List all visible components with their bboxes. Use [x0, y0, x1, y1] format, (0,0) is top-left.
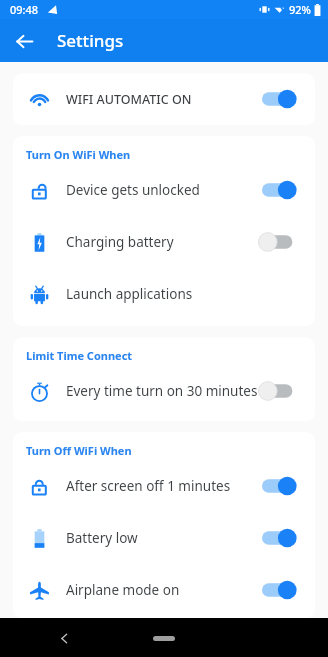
button[interactable]: Charging battery — [13, 216, 315, 268]
button[interactable]: Toggle on — [262, 473, 302, 499]
staticText: Battery low — [66, 529, 262, 547]
button[interactable]: Toggle off — [262, 229, 302, 255]
staticText: Airplane mode on — [66, 581, 262, 599]
button[interactable]: Toggle on — [262, 577, 302, 603]
staticText: Settings — [57, 29, 124, 52]
button[interactable]: Toggle off — [262, 378, 302, 404]
button[interactable]: Toggle on — [262, 86, 302, 112]
staticText: Charging battery — [66, 233, 262, 251]
staticText: 09:48 — [10, 2, 39, 17]
staticText: Turn Off WiFi When — [26, 443, 132, 458]
button[interactable]: Every time turn on 30 minutes — [13, 365, 315, 417]
button[interactable]: After screen off 1 minutes — [13, 460, 315, 512]
button[interactable]: Battery low — [13, 512, 315, 564]
button[interactable]: WIFI AUTOMATIC ON — [13, 73, 315, 125]
staticText: Every time turn on 30 minutes — [66, 382, 262, 400]
button[interactable]: Toggle on — [262, 177, 302, 203]
staticText: Turn On WiFi When — [26, 147, 131, 162]
button[interactable]: Launch applications — [13, 268, 315, 320]
button[interactable]: Back — [50, 624, 78, 652]
staticText: Launch applications — [66, 285, 302, 303]
button[interactable]: Airplane mode on — [13, 564, 315, 616]
button[interactable]: Toggle on — [262, 525, 302, 551]
staticText: 92% — [289, 2, 311, 17]
staticText: Device gets unlocked — [66, 181, 262, 199]
staticText: Limit Time Connect — [26, 348, 133, 363]
button[interactable]: Home — [141, 627, 187, 649]
button[interactable]: Device gets unlocked — [13, 164, 315, 216]
button[interactable]: Back — [6, 23, 42, 59]
staticText: WIFI AUTOMATIC ON — [66, 91, 262, 108]
staticText: After screen off 1 minutes — [66, 477, 262, 495]
